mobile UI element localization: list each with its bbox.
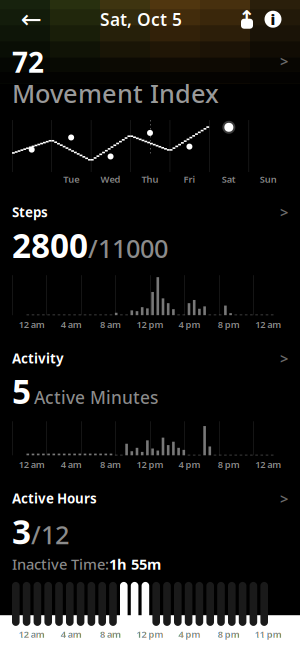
staticText: 4 pm <box>178 458 200 471</box>
button[interactable]: Share <box>234 6 260 32</box>
button[interactable]: 72 <box>0 43 300 185</box>
staticText: 4 am <box>61 318 82 331</box>
staticText: Activity <box>12 349 64 367</box>
staticText: Sat, Oct 5 <box>100 8 182 31</box>
staticText: Tue <box>63 173 79 185</box>
staticText: 3 <box>12 509 31 553</box>
staticText: Steps <box>12 203 48 221</box>
staticText: > <box>280 202 288 222</box>
staticText: 12 am <box>19 318 45 331</box>
staticText: 8 pm <box>218 628 240 640</box>
staticText: Thu <box>141 173 158 185</box>
button[interactable]: Activity <box>0 340 300 480</box>
staticText: 11 pm <box>255 628 282 640</box>
staticText: 12 pm <box>136 628 163 640</box>
staticText: Sat <box>222 173 236 185</box>
staticText: > <box>280 489 288 508</box>
staticText: Active Hours <box>12 490 97 507</box>
staticText: 2800 <box>12 223 88 267</box>
staticText: Wed <box>101 173 121 185</box>
staticText: 4 pm <box>178 318 200 331</box>
staticText: 12 pm <box>136 318 163 331</box>
staticText: /11000 <box>88 231 168 265</box>
staticText: 4 am <box>61 628 82 640</box>
staticText: 12 am <box>255 318 281 331</box>
staticText: 5 <box>12 369 31 413</box>
staticText: 8 pm <box>218 458 240 471</box>
staticText: Movement Index <box>12 76 219 110</box>
staticText: 8 pm <box>218 318 240 331</box>
staticText: i <box>270 9 275 29</box>
staticText: ← <box>20 5 41 34</box>
staticText: 12 am <box>19 458 45 471</box>
staticText: Active Minutes <box>34 386 158 409</box>
staticText: 8 am <box>100 458 121 471</box>
staticText: Inactive Time: <box>12 554 109 574</box>
staticText: Fri <box>183 173 195 185</box>
staticText: /12 <box>31 518 69 551</box>
staticText: 8 am <box>100 318 121 331</box>
staticText: > <box>280 349 288 368</box>
staticText: 72 <box>12 43 44 80</box>
button[interactable]: Information <box>260 6 286 32</box>
staticText: 12 am <box>19 628 45 640</box>
staticText: 1h 55m <box>109 554 161 574</box>
staticText: 12 am <box>255 458 281 471</box>
button[interactable]: Steps <box>0 193 300 339</box>
staticText: > <box>280 51 288 71</box>
staticText: Sun <box>260 173 277 185</box>
staticText: 12 pm <box>136 458 163 471</box>
staticText: 8 am <box>100 628 121 640</box>
button[interactable]: Back <box>14 2 48 36</box>
button[interactable]: Active Hours <box>0 480 300 649</box>
staticText: 4 am <box>61 458 82 471</box>
staticText: 4 pm <box>178 628 200 640</box>
staticText: ↑ <box>238 6 255 29</box>
